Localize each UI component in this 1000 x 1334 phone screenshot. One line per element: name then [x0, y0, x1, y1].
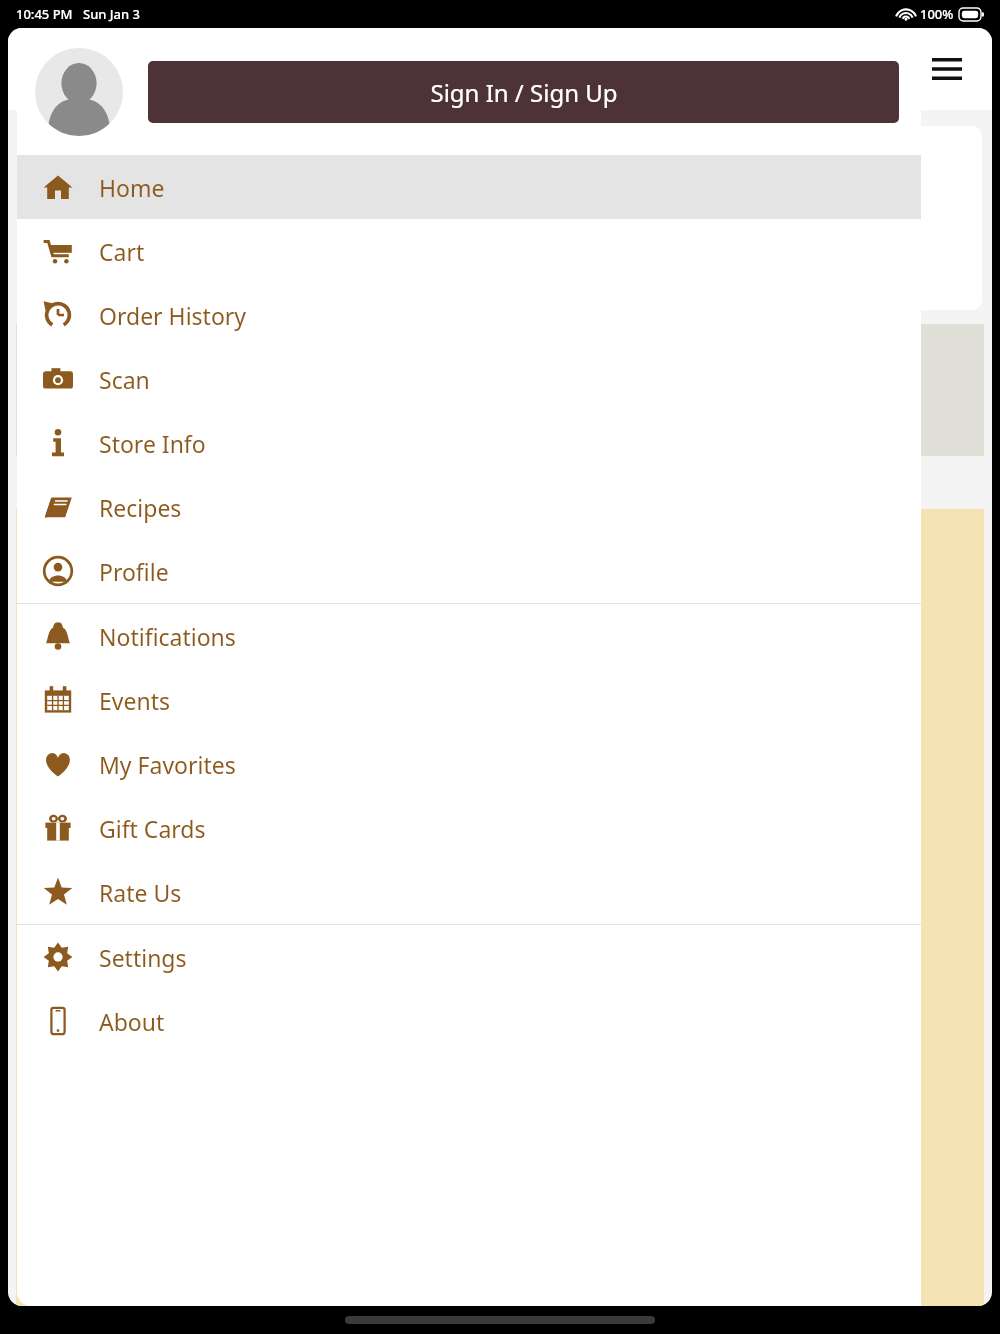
button[interactable]: Scan	[17, 347, 921, 411]
staticText: Sun Jan 3	[83, 5, 141, 23]
staticText: 100%	[920, 5, 954, 23]
button[interactable]: Settings	[17, 925, 921, 989]
staticText: My Favorites	[99, 749, 236, 780]
button[interactable]: Cart	[17, 219, 921, 283]
staticText: Home	[99, 172, 165, 203]
staticText: Cart	[99, 236, 145, 267]
button[interactable]: Events	[17, 668, 921, 732]
button[interactable]: Notifications	[17, 604, 921, 668]
staticText: Scan	[99, 364, 150, 395]
button[interactable]: Open navigation menu	[924, 46, 970, 92]
staticText: Events	[99, 685, 170, 716]
button[interactable]: Sign In / Sign Up	[148, 61, 899, 123]
staticText: Gift Cards	[99, 813, 206, 844]
staticText: Settings	[99, 942, 187, 973]
button[interactable]: Recipes	[17, 475, 921, 539]
staticText: Recipes	[99, 492, 182, 523]
button[interactable]: Profile	[17, 539, 921, 603]
button[interactable]: Home	[17, 155, 921, 219]
staticText: Notifications	[99, 621, 236, 652]
staticText: Rate Us	[99, 877, 182, 908]
button[interactable]: Rate Us	[17, 860, 921, 924]
staticText: Sign In / Sign Up	[430, 76, 618, 109]
staticText: Store Info	[99, 428, 206, 459]
staticText: About	[99, 1006, 165, 1037]
button[interactable]: Gift Cards	[17, 796, 921, 860]
staticText: 10:45 PM	[16, 5, 73, 23]
button[interactable]: My Favorites	[17, 732, 921, 796]
button[interactable]: Order History	[17, 283, 921, 347]
staticText: Profile	[99, 556, 169, 587]
staticText: Order History	[99, 300, 247, 331]
button[interactable]: Profile picture	[35, 48, 123, 136]
staticText: COUPONS	[22, 466, 148, 501]
button[interactable]: About	[17, 989, 921, 1053]
button[interactable]: Store Info	[17, 411, 921, 475]
